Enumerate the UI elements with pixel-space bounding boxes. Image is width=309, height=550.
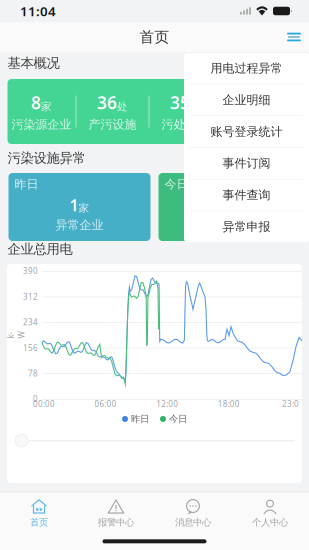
staticText: 首页 — [30, 517, 48, 528]
staticText: 35 — [170, 91, 190, 114]
staticText: 账号登录统计 — [210, 124, 282, 139]
staticText: 0 — [33, 394, 38, 404]
staticText: 异常企业 — [55, 218, 103, 232]
staticText: 今日 — [169, 413, 187, 425]
staticText: 异常申报 — [222, 219, 270, 234]
staticText: 156 — [23, 342, 38, 353]
staticText: 监测点位 — [238, 117, 286, 132]
staticText: kW — [12, 324, 19, 346]
staticText: 12:00 — [156, 399, 178, 409]
staticText: 报警中心 — [98, 517, 134, 528]
staticText: 个人中心 — [252, 517, 288, 528]
staticText: 18:00 — [218, 399, 240, 409]
button[interactable]: 首页 — [0, 495, 77, 531]
staticText: 基本概况 — [7, 55, 59, 71]
staticText: 36 — [97, 91, 117, 114]
staticText: 事件查询 — [222, 188, 270, 202]
button[interactable]: 事件查询 — [184, 180, 309, 211]
staticText: 异常企业 — [205, 218, 253, 232]
staticText: 11:04 — [20, 2, 56, 20]
staticText: 个 — [266, 100, 277, 113]
staticText: 78 — [28, 368, 38, 379]
staticText: 首页 — [139, 28, 169, 46]
staticText: 事件订阅 — [222, 156, 270, 171]
button[interactable]: 异常申报 — [184, 211, 309, 242]
button[interactable]: 个人中心 — [231, 495, 308, 531]
staticText: 消息中心 — [175, 517, 211, 528]
button[interactable]: 报警中心 — [77, 495, 154, 531]
staticText: 污染源企业 — [11, 117, 71, 132]
staticText: 12 — [246, 91, 266, 114]
staticText: 用电过程异常 — [210, 61, 282, 76]
staticText: 06:00 — [95, 399, 117, 409]
button[interactable]: 1 — [8, 173, 150, 241]
staticText: 污处设施 — [161, 117, 209, 132]
button[interactable]: 账号登录统计 — [184, 116, 309, 147]
staticText: 处 — [117, 100, 128, 113]
button[interactable]: 企业明细 — [184, 84, 309, 115]
staticText: 今日 — [164, 177, 188, 192]
staticText: 昨日 — [14, 177, 38, 192]
button[interactable]: 0 — [158, 173, 300, 241]
staticText: 00:00 — [33, 399, 55, 409]
staticText: 8 — [31, 91, 41, 114]
staticText: 企业明细 — [222, 93, 270, 107]
staticText: 企业总用电 — [7, 241, 72, 257]
staticText: 390 — [23, 266, 38, 276]
staticText: 污染设施异常 — [7, 150, 85, 166]
button[interactable]: 消息中心 — [154, 495, 231, 531]
staticText: 家 — [41, 100, 52, 113]
button[interactable]: 事件订阅 — [184, 148, 309, 179]
button[interactable]: 菜单 — [275, 23, 309, 50]
staticText: 家 — [78, 202, 89, 215]
staticText: 312 — [23, 291, 38, 302]
staticText: 0 — [219, 194, 228, 216]
staticText: 234 — [23, 317, 38, 327]
staticText: 1 — [69, 194, 78, 216]
staticText: 23:0 — [282, 399, 299, 409]
button[interactable]: 用电过程异常 — [184, 53, 309, 84]
staticText: 昨日 — [131, 413, 149, 425]
staticText: 产污设施 — [88, 117, 136, 132]
